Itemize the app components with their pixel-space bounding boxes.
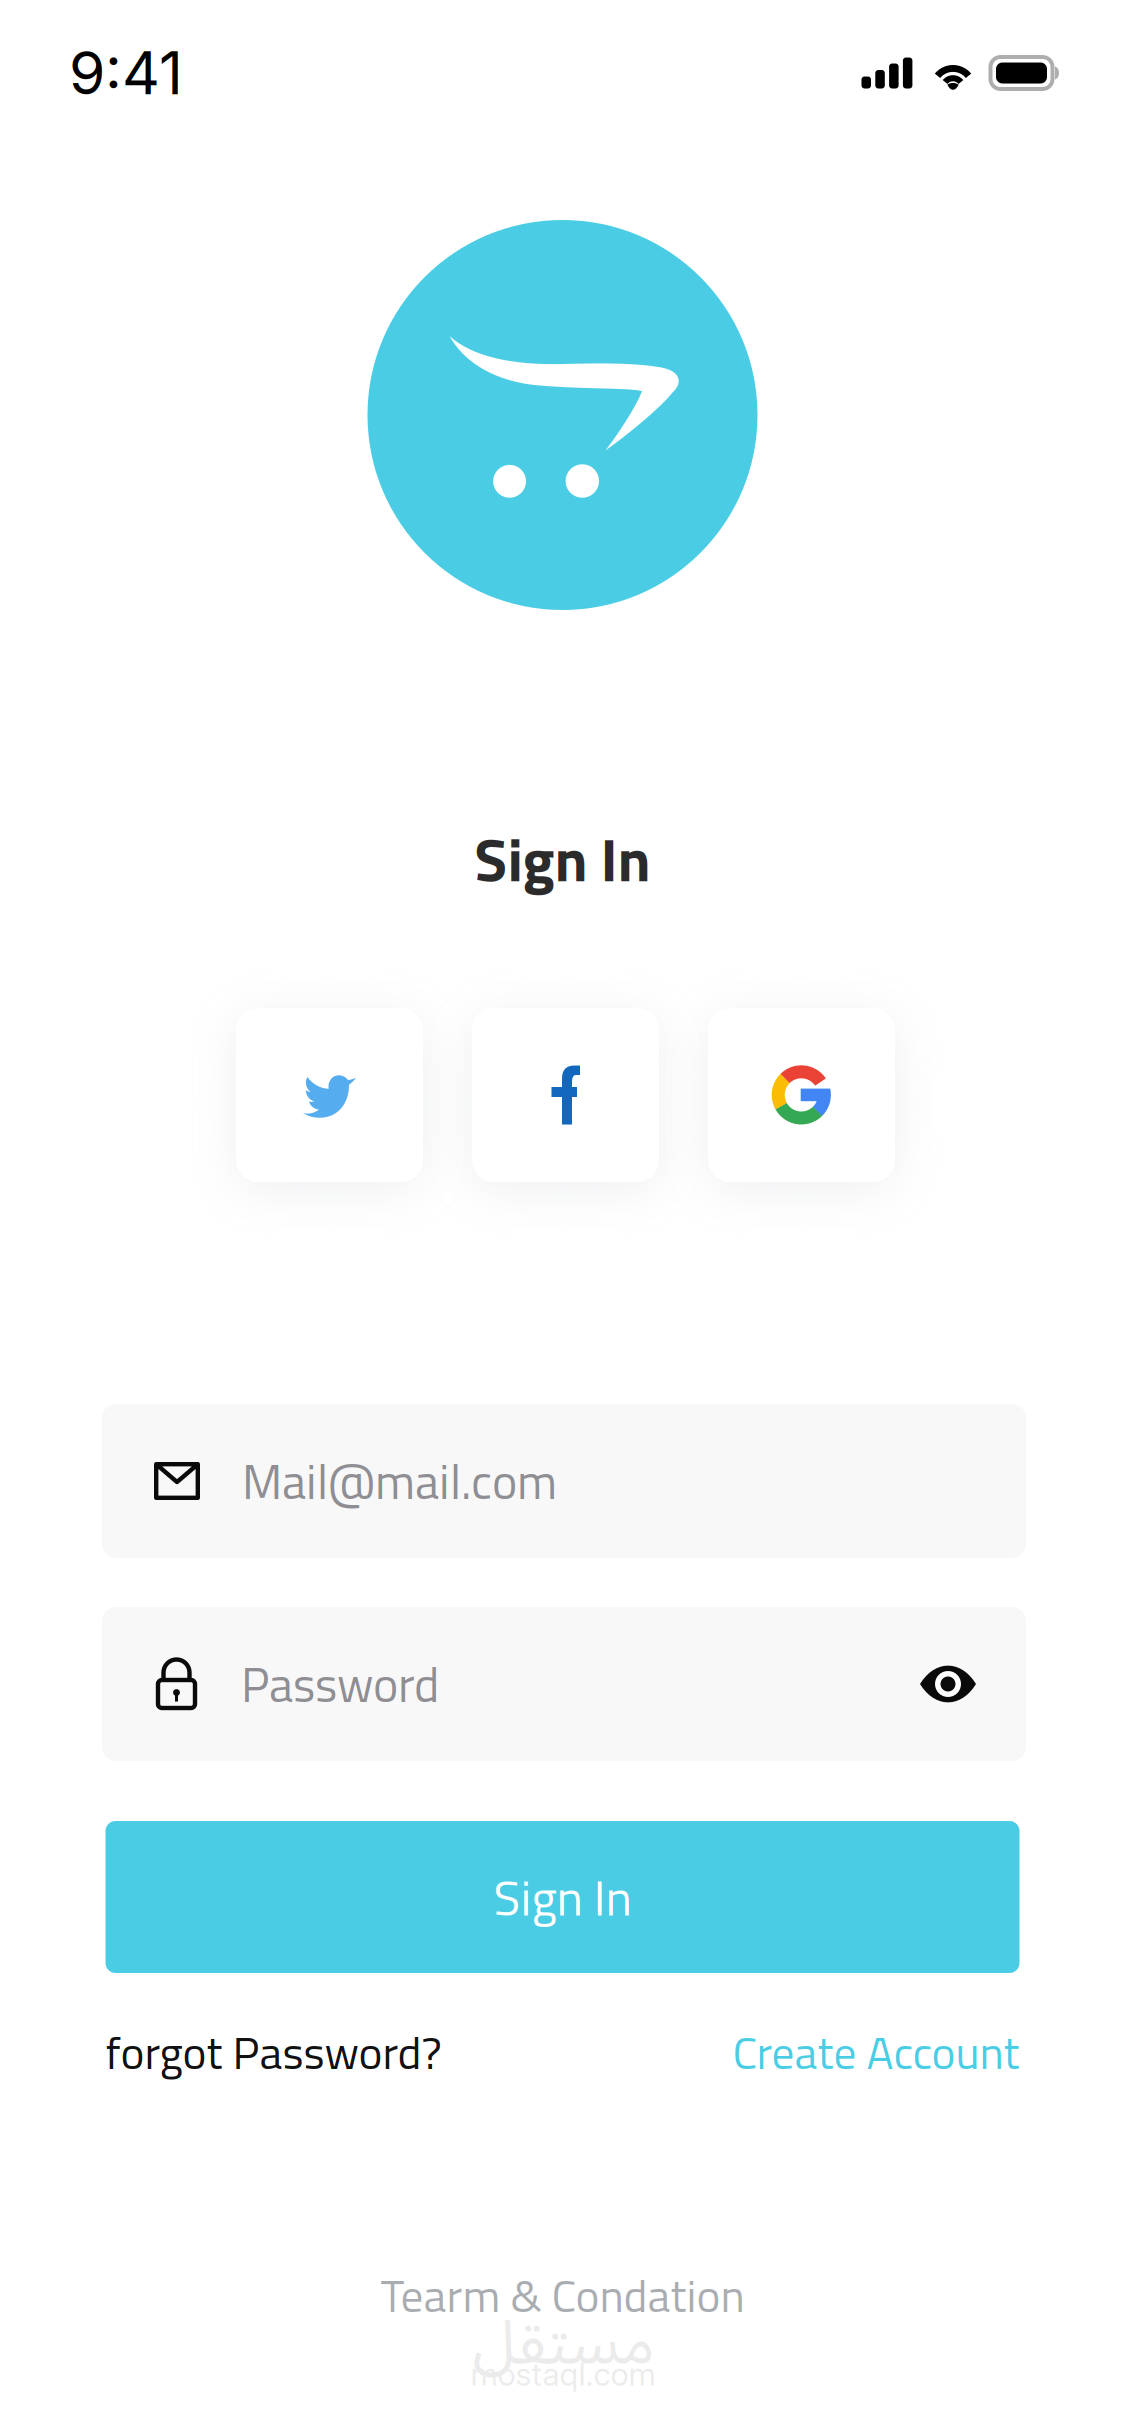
staticText: Sign In: [474, 813, 650, 905]
button[interactable]: Tearm & Condation: [380, 2260, 744, 2329]
staticText: Tearm & Condation: [380, 2260, 744, 2329]
staticText: forgot Password?: [105, 2017, 441, 2086]
staticText: Mail@mail.com: [242, 1444, 557, 1517]
staticText: 9:41: [69, 37, 183, 108]
staticText: Password: [241, 1647, 439, 1720]
button[interactable]: Show password: [920, 1665, 976, 1703]
button[interactable]: Sign in with Facebook: [472, 1008, 659, 1182]
button[interactable]: Create Account: [732, 2017, 1019, 2086]
button[interactable]: Sign In: [105, 1821, 1019, 1973]
staticText: Create Account: [732, 2017, 1019, 2086]
staticText: مستقل: [472, 2279, 654, 2409]
staticText: mostaql.com: [470, 2355, 655, 2393]
button[interactable]: forgot Password?: [105, 2017, 441, 2086]
button[interactable]: Sign in with Google: [708, 1008, 895, 1182]
staticText: Sign In: [493, 1859, 631, 1934]
button[interactable]: Sign in with Twitter: [236, 1008, 423, 1182]
button[interactable]: Mail@mail.com: [102, 1404, 1026, 1558]
